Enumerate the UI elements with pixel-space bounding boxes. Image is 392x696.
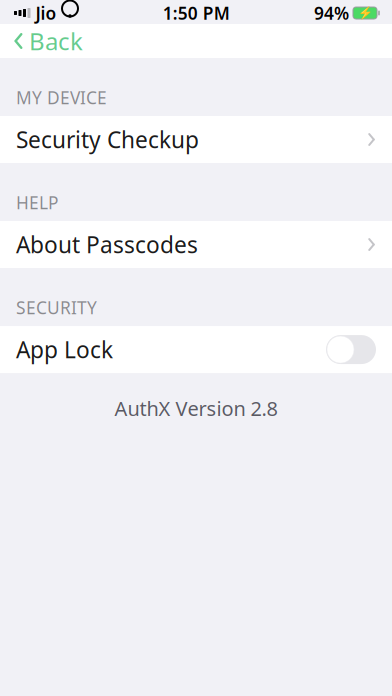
staticText: Security Checkup <box>16 124 199 155</box>
button[interactable]: Security Checkup <box>0 116 392 163</box>
staticText: Back <box>29 25 83 57</box>
staticText: AuthX Version 2.8 <box>114 395 277 422</box>
staticText: MY DEVICE <box>16 86 107 109</box>
button[interactable]: Back <box>0 19 83 63</box>
staticText: ⚡ <box>357 6 372 20</box>
staticText: App Lock <box>16 334 113 365</box>
staticText: HELP <box>16 191 58 214</box>
button[interactable]: App Lock toggle <box>326 335 376 364</box>
staticText: 1:50 PM <box>163 1 230 24</box>
staticText: About Passcodes <box>16 229 198 260</box>
staticText: 94% <box>314 1 349 24</box>
staticText: Jio <box>35 1 56 24</box>
staticText: SECURITY <box>16 296 97 319</box>
button[interactable]: About Passcodes <box>0 221 392 268</box>
